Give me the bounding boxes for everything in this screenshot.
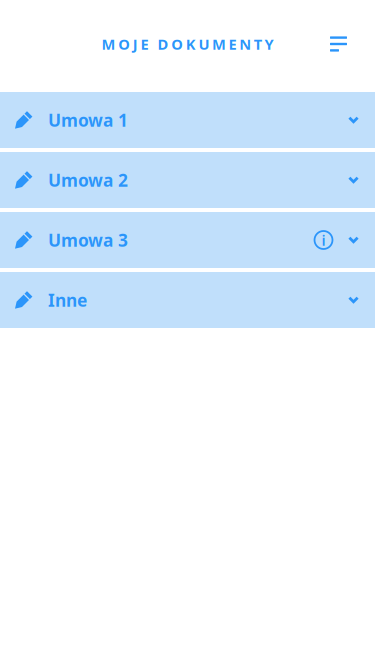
staticText: MOJE DOKUMENTY xyxy=(102,34,273,54)
button[interactable]: Umowa 2 xyxy=(0,152,375,208)
staticText: Umowa 3 xyxy=(48,228,128,251)
button[interactable]: Umowa 3 xyxy=(0,212,375,268)
button[interactable]: Menu xyxy=(319,26,358,61)
button[interactable]: Inne xyxy=(0,272,375,328)
staticText: Inne xyxy=(48,288,87,311)
button[interactable]: Informacje xyxy=(314,230,348,249)
staticText: i xyxy=(321,230,325,250)
staticText: Umowa 1 xyxy=(48,108,128,131)
button[interactable]: Umowa 1 xyxy=(0,92,375,148)
staticText: Umowa 2 xyxy=(48,168,128,191)
